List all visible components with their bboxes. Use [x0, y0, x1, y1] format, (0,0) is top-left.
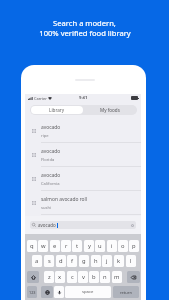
button[interactable]: e [50, 240, 60, 252]
button[interactable]: x [55, 271, 65, 283]
staticText: 123 [29, 290, 36, 295]
staticText: My foods [100, 107, 120, 113]
staticText: sushi [41, 205, 52, 211]
staticText: x [58, 273, 62, 281]
button[interactable]: avocado [32, 221, 134, 229]
button[interactable]: q [27, 240, 37, 252]
button[interactable]: s [44, 255, 54, 267]
staticText: g [82, 257, 86, 265]
button[interactable]: y [84, 240, 94, 252]
button[interactable]: t [72, 240, 82, 252]
staticText: n [103, 273, 107, 281]
button[interactable]: Dictation [54, 286, 64, 298]
staticText: r [65, 242, 68, 250]
button[interactable]: Backspace [127, 271, 140, 283]
button[interactable]: w [38, 240, 48, 252]
button[interactable]: z [44, 271, 54, 283]
button[interactable]: salmon avocado roll [25, 191, 141, 215]
staticText: v [82, 273, 85, 281]
staticText: avocado [41, 124, 61, 131]
button[interactable]: l [126, 255, 136, 267]
staticText: m [114, 273, 120, 281]
staticText: j [106, 257, 108, 265]
button[interactable]: My foods [83, 106, 136, 114]
button[interactable]: space [65, 286, 111, 298]
button[interactable]: o [118, 240, 128, 252]
staticText: ripe [41, 133, 49, 139]
staticText: p [132, 242, 136, 250]
staticText: avocado [41, 148, 61, 155]
staticText: w [41, 242, 46, 250]
staticText: o [121, 242, 125, 250]
button[interactable]: Emoji keyboard [41, 286, 53, 298]
button[interactable]: a [32, 255, 42, 267]
staticText: 100% verified food library [39, 28, 131, 38]
staticText: q [30, 242, 34, 250]
button[interactable]: 123 [27, 286, 37, 298]
button[interactable]: avocado [25, 119, 141, 143]
button[interactable]: avocado [25, 167, 141, 191]
staticText: California [41, 181, 60, 187]
button[interactable]: j [102, 255, 112, 267]
staticText: l [130, 257, 132, 265]
staticText: return [120, 290, 132, 295]
staticText: f [71, 257, 73, 265]
button[interactable]: v [78, 271, 88, 283]
staticText: e [53, 242, 57, 250]
button[interactable]: n [100, 271, 110, 283]
staticText: d [59, 257, 63, 265]
button[interactable]: p [129, 240, 139, 252]
staticText: h [94, 257, 98, 265]
staticText: avocado [41, 172, 61, 179]
staticText: Carrier [34, 96, 47, 101]
staticText: Library [49, 107, 65, 113]
staticText: i [111, 242, 113, 250]
staticText: avocado [38, 222, 56, 228]
button[interactable]: u [95, 240, 105, 252]
staticText: salmon avocado roll [41, 196, 88, 203]
staticText: space [82, 289, 94, 295]
staticText: y [88, 242, 91, 250]
button[interactable]: b [89, 271, 99, 283]
button[interactable]: d [56, 255, 66, 267]
button[interactable]: h [91, 255, 101, 267]
staticText: 9:41 [79, 95, 88, 101]
button[interactable]: Shift [27, 271, 39, 283]
staticText: z [48, 273, 51, 281]
button[interactable]: m [112, 271, 122, 283]
staticText: b [92, 273, 96, 281]
staticText: Florida [41, 157, 55, 163]
staticText: t [76, 242, 79, 250]
staticText: c [71, 273, 74, 281]
staticText: k [117, 257, 121, 265]
staticText: a [35, 257, 39, 265]
button[interactable]: k [114, 255, 124, 267]
staticText: u [98, 242, 102, 250]
button[interactable]: c [67, 271, 77, 283]
button[interactable]: f [67, 255, 77, 267]
staticText: s [48, 257, 51, 265]
staticText: Search a modern, [53, 18, 116, 28]
button[interactable]: g [79, 255, 89, 267]
button[interactable]: return [113, 286, 139, 298]
button[interactable]: i [107, 240, 117, 252]
button[interactable]: Library [31, 106, 83, 114]
button[interactable]: avocado [25, 143, 141, 167]
button[interactable]: r [61, 240, 71, 252]
